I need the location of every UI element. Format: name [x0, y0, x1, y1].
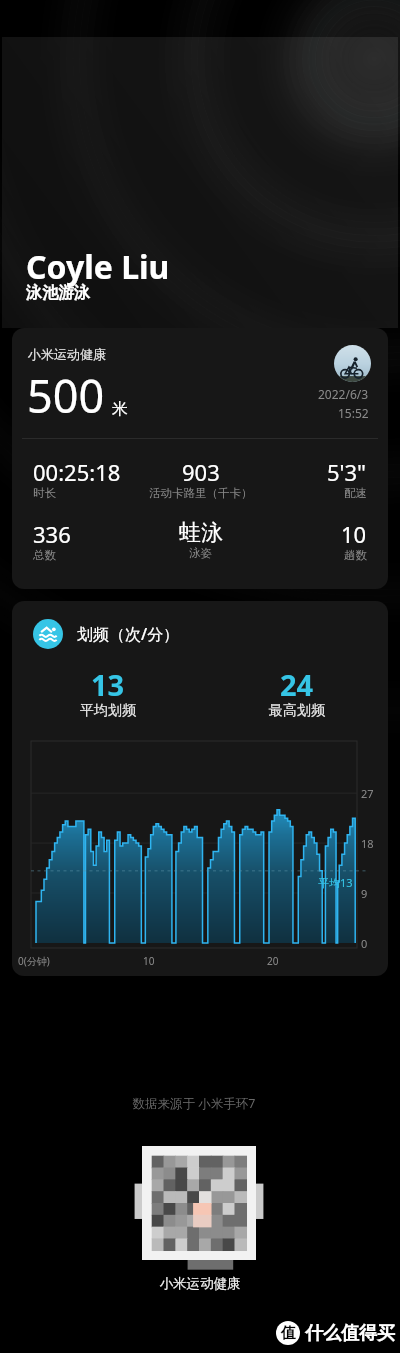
staticText: 米: [112, 399, 128, 419]
staticText: 时长: [33, 486, 56, 500]
staticText: 最高划频: [269, 702, 325, 720]
staticText: 9: [361, 886, 368, 901]
staticText: 值: [281, 1324, 296, 1343]
staticText: 泳姿: [189, 546, 212, 560]
staticText: 903: [182, 457, 220, 487]
staticText: 27: [361, 786, 374, 801]
staticText: 泳池游泳: [26, 283, 90, 303]
staticText: 0: [361, 936, 368, 951]
button[interactable]: Swimming stroke rate: [12, 601, 388, 976]
staticText: 小米运动健康: [0, 1275, 400, 1292]
staticText: 00:25:18: [33, 457, 121, 487]
staticText: 蛙泳: [179, 519, 223, 547]
staticText: 配速: [344, 486, 367, 500]
staticText: 划频（次/分）: [77, 623, 180, 645]
button[interactable]: Activity photo: [334, 345, 371, 382]
button[interactable]: 小米运动健康: [12, 328, 388, 589]
staticText: 15:52: [338, 405, 369, 421]
staticText: 2022/6/3: [318, 386, 369, 402]
staticText: 20: [267, 954, 279, 968]
staticText: 336: [33, 519, 71, 549]
staticText: 24: [280, 665, 314, 704]
staticText: Coyle Liu: [26, 245, 170, 289]
staticText: 0(分钟): [18, 954, 50, 968]
button[interactable]: Swimming stroke rate: [33, 619, 63, 649]
staticText: 10: [341, 519, 367, 549]
staticText: 总数: [33, 548, 56, 562]
staticText: 什么值得买: [305, 1322, 395, 1345]
staticText: 小米运动健康: [28, 346, 106, 362]
staticText: 10: [143, 954, 155, 968]
staticText: 平均13: [318, 875, 353, 890]
staticText: 13: [91, 665, 125, 704]
staticText: 活动卡路里（千卡）: [149, 486, 253, 500]
staticText: 趟数: [344, 548, 367, 562]
button[interactable]: Xiaomi Health QR code: [142, 1146, 256, 1260]
staticText: 平均划频: [80, 702, 136, 720]
staticText: 5'3": [327, 457, 367, 487]
staticText: 数据来源于 小米手环7: [0, 1095, 394, 1112]
staticText: 18: [361, 836, 374, 851]
staticText: 500: [27, 365, 105, 426]
